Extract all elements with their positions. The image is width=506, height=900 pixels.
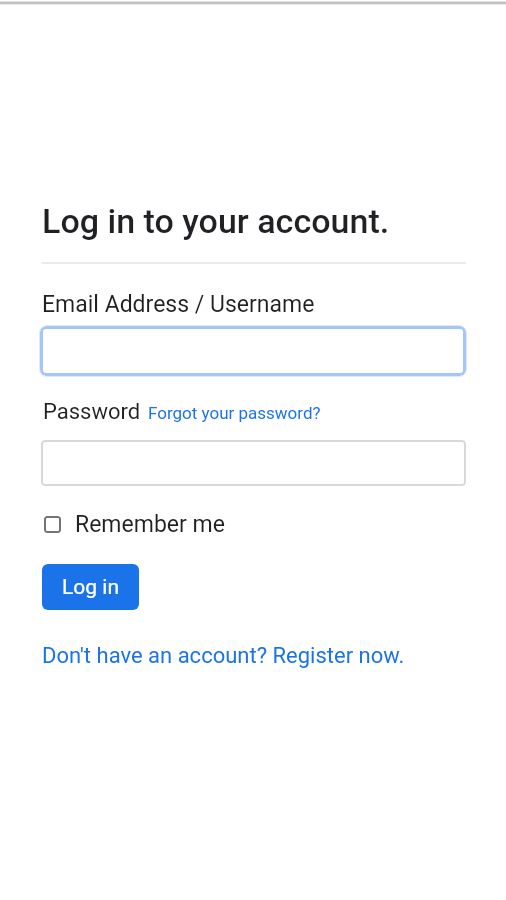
button[interactable]: [41, 440, 466, 486]
button[interactable]: Log in: [42, 564, 139, 610]
staticText: Remember me: [75, 511, 225, 538]
button[interactable]: Forgot your password?: [148, 403, 321, 423]
button[interactable]: Don't have an account? Register now.: [42, 643, 405, 669]
staticText: Password: [43, 399, 141, 425]
staticText: Email Address / Username: [42, 291, 315, 318]
staticText: Log in: [62, 575, 119, 600]
button[interactable]: [40, 326, 466, 376]
button[interactable]: Remember me: [44, 511, 225, 538]
staticText: Log in to your account.: [42, 201, 390, 241]
